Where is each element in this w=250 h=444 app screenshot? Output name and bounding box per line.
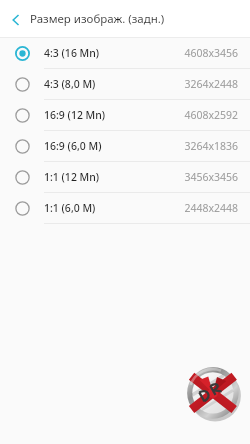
staticText: 2448x2448 bbox=[184, 201, 238, 215]
staticText: 4608x3456 bbox=[184, 46, 238, 60]
button[interactable]: 4:3 (8,0 M) bbox=[0, 69, 250, 99]
button[interactable]: 4:3 (16 Mn) bbox=[0, 38, 250, 68]
staticText: 1:1 (12 Mn) bbox=[44, 170, 184, 184]
staticText: 16:9 (12 Mn) bbox=[44, 108, 184, 122]
staticText: 4608x2592 bbox=[184, 108, 238, 122]
staticText: 3456x3456 bbox=[184, 170, 238, 184]
staticText: 16:9 (6,0 M) bbox=[44, 139, 184, 153]
button[interactable]: 16:9 (12 Mn) bbox=[0, 100, 250, 130]
staticText: 4:3 (16 Mn) bbox=[44, 46, 184, 60]
staticText: 1:1 (6,0 M) bbox=[44, 201, 184, 215]
button[interactable]: 1:1 (6,0 M) bbox=[0, 193, 250, 223]
staticText: 4:3 (8,0 M) bbox=[44, 77, 184, 91]
staticText: 3264x2448 bbox=[184, 77, 238, 91]
button[interactable]: Back bbox=[4, 8, 28, 32]
button[interactable]: 1:1 (12 Mn) bbox=[0, 162, 250, 192]
staticText: 3264x1836 bbox=[184, 139, 238, 153]
button[interactable]: 16:9 (6,0 M) bbox=[0, 131, 250, 161]
staticText: Размер изображ. (задн.) bbox=[30, 11, 165, 27]
